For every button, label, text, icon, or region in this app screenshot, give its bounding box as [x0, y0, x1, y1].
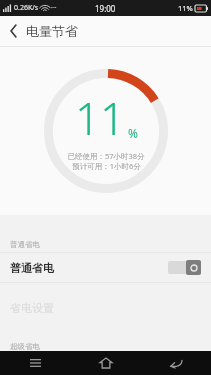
button[interactable]: Toggle [168, 260, 201, 275]
staticText: 19:00 [95, 3, 116, 14]
button[interactable]: Back [141, 351, 211, 375]
staticText: 普通省电 [10, 261, 54, 275]
button[interactable]: Back [0, 16, 26, 46]
staticText: 已经使用：57小时38分 [67, 151, 145, 161]
staticText: 预计可用：1小时6分 [72, 161, 141, 171]
staticText: 0.26K/s [14, 3, 39, 13]
button[interactable]: Menu [0, 351, 71, 375]
staticText: 超级省电 [10, 342, 40, 351]
staticText: 电量节省 [26, 23, 78, 39]
staticText: % [128, 125, 138, 141]
button[interactable]: Home [71, 351, 141, 375]
staticText: 11% [178, 3, 193, 13]
button[interactable]: 普通省电 [0, 253, 211, 282]
staticText: ··· [51, 3, 57, 13]
staticText: 省电设置 [10, 301, 54, 315]
button[interactable]: 省电设置 [0, 293, 211, 323]
staticText: 11 [75, 88, 126, 148]
staticText: 普通省电 [10, 240, 40, 249]
